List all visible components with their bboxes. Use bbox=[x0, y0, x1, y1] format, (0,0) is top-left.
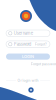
button[interactable]: Forgot password? bbox=[31, 62, 56, 66]
staticText: Or login with bbox=[17, 78, 38, 82]
button[interactable]: Username bbox=[6, 30, 50, 37]
staticText: Username bbox=[14, 31, 33, 36]
button[interactable]: Password bbox=[6, 41, 50, 47]
button[interactable]: Sign in with social account bbox=[28, 87, 34, 93]
staticText: LOGIN bbox=[22, 54, 34, 59]
staticText: Password bbox=[14, 42, 32, 47]
staticText: Forgot? bbox=[35, 42, 47, 46]
button[interactable]: LOGIN bbox=[6, 53, 50, 60]
staticText: Forgot password? bbox=[31, 62, 56, 66]
